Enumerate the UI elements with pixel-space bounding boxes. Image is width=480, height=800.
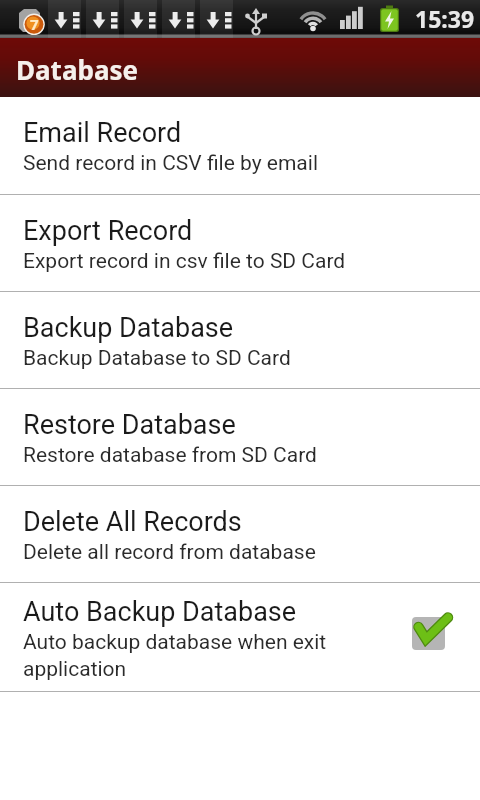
- button[interactable]: Delete All Records: [0, 486, 480, 582]
- staticText: Backup Database to SD Card: [23, 346, 291, 371]
- staticText: Database: [16, 52, 139, 87]
- staticText: Email Record: [23, 117, 182, 149]
- staticText: Send record in CSV file by email: [23, 151, 318, 176]
- staticText: 15:39: [415, 3, 475, 34]
- staticText: Auto backup database when exit applicati…: [23, 630, 330, 681]
- button[interactable]: Export Record: [0, 195, 480, 291]
- staticText: Export Record: [23, 215, 193, 247]
- staticText: Restore Database: [23, 409, 236, 441]
- staticText: Backup Database: [23, 312, 234, 344]
- staticText: 7: [30, 14, 39, 34]
- staticText: Auto Backup Database: [23, 596, 297, 628]
- button[interactable]: Restore Database: [0, 389, 480, 485]
- staticText: Delete all record from database: [23, 540, 316, 565]
- staticText: Export record in csv file to SD Card: [23, 249, 346, 274]
- staticText: Restore database from SD Card: [23, 443, 317, 468]
- staticText: Delete All Records: [23, 506, 242, 538]
- button[interactable]: Auto Backup Database: [0, 583, 480, 691]
- button[interactable]: Backup Database: [0, 292, 480, 388]
- button[interactable]: Email Record: [0, 97, 480, 194]
